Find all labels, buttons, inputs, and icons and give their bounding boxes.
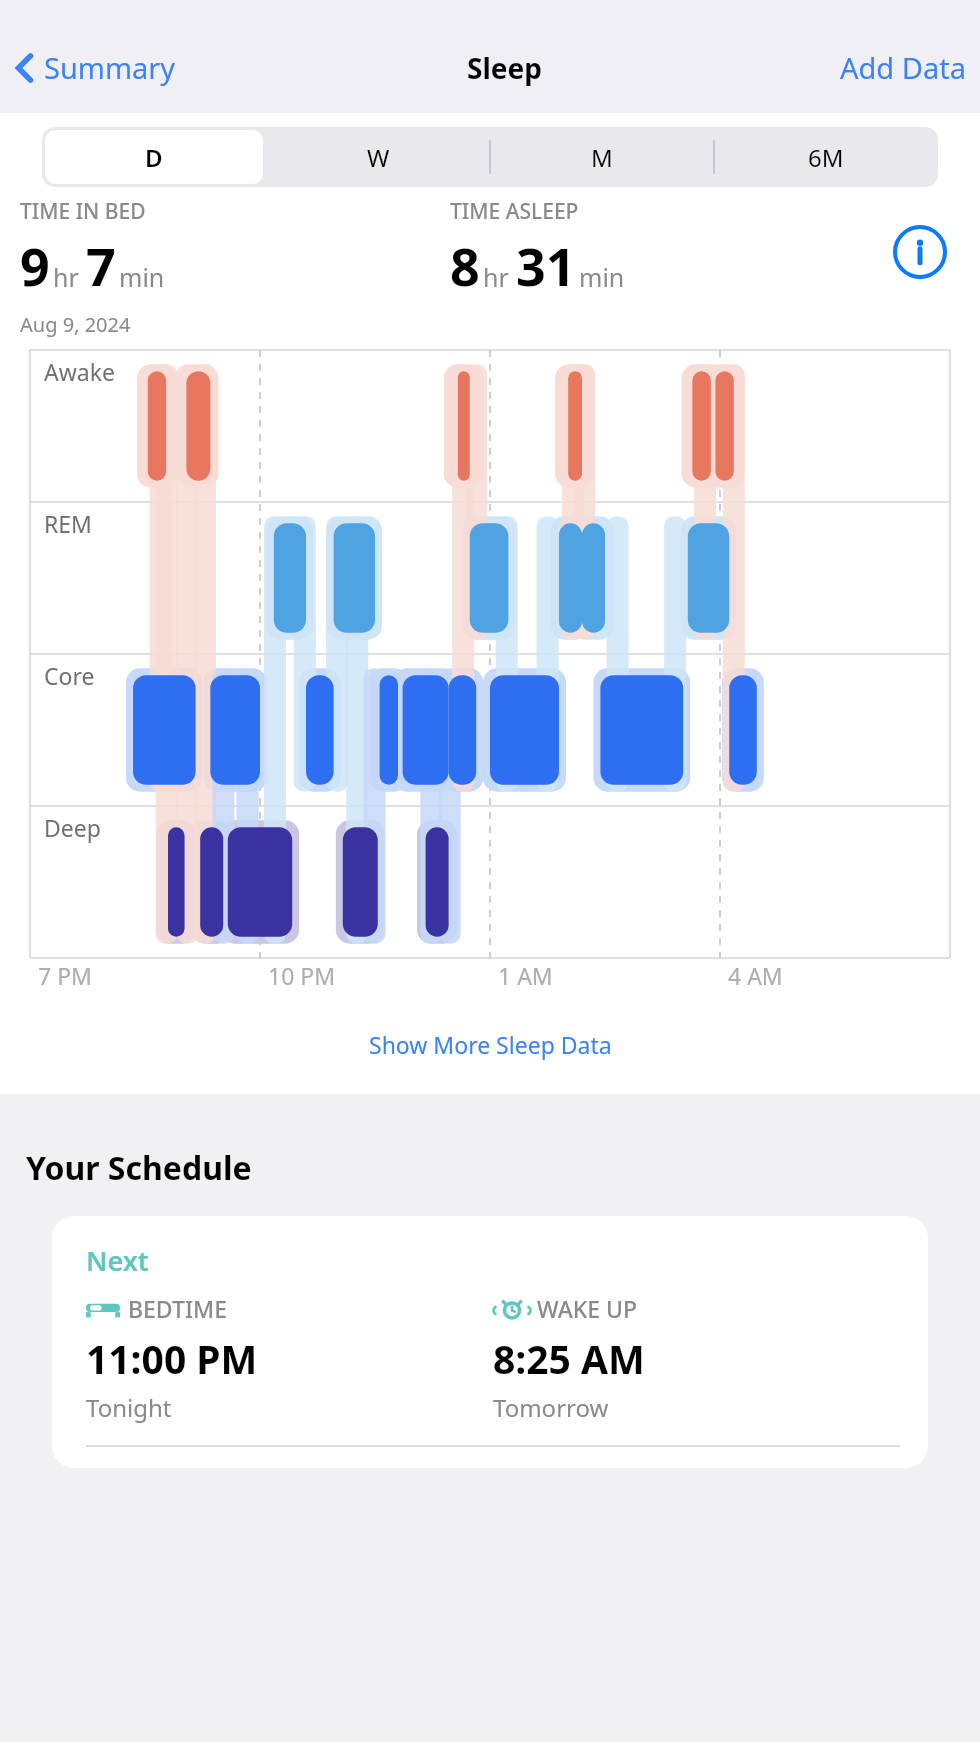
staticText: Awake (44, 356, 115, 387)
staticText: WAKE UP (537, 1293, 638, 1324)
staticText: Tonight (86, 1391, 172, 1424)
staticText: Core (44, 660, 95, 691)
button[interactable]: D (45, 130, 263, 184)
staticText: 11:00 PM (86, 1332, 258, 1385)
staticText: 4 AM (728, 960, 783, 991)
staticText: hr (483, 260, 509, 294)
staticText: hr (53, 260, 79, 294)
staticText: 7 PM (38, 960, 92, 991)
staticText: 10 PM (268, 960, 336, 991)
staticText: Tomorrow (493, 1391, 609, 1424)
staticText: 8:25 AM (493, 1332, 645, 1385)
staticText: Deep (44, 812, 101, 843)
staticText: TIME ASLEEP (450, 197, 579, 226)
staticText: 8 (450, 230, 480, 301)
button[interactable]: Information (892, 224, 948, 280)
staticText: min (579, 260, 625, 294)
button[interactable]: Add Data (826, 44, 980, 91)
staticText: 7 (86, 230, 116, 301)
staticText: Aug 9, 2024 (20, 311, 131, 338)
staticText: 1 AM (498, 960, 553, 991)
staticText: 6M (808, 141, 844, 174)
staticText: Next (86, 1242, 149, 1279)
button[interactable]: Next (52, 1216, 928, 1468)
staticText: D (145, 141, 163, 174)
button[interactable]: Show More Sleep Data (0, 1021, 980, 1068)
button[interactable]: M (493, 130, 711, 184)
staticText: 31 (516, 230, 576, 301)
staticText: Show More Sleep Data (369, 1029, 612, 1060)
staticText: min (119, 260, 165, 294)
staticText: Summary (44, 48, 176, 87)
button[interactable]: 6M (717, 130, 935, 184)
button[interactable]: W (269, 130, 487, 184)
staticText: Add Data (840, 48, 966, 87)
button[interactable]: Summary (0, 44, 184, 91)
staticText: M (591, 141, 613, 174)
staticText: W (367, 141, 390, 174)
staticText: Your Schedule (26, 1146, 252, 1190)
staticText: TIME IN BED (20, 197, 146, 226)
staticText: 9 (20, 230, 50, 301)
staticText: BEDTIME (128, 1293, 227, 1324)
staticText: Sleep (467, 49, 542, 87)
staticText: REM (44, 508, 92, 539)
